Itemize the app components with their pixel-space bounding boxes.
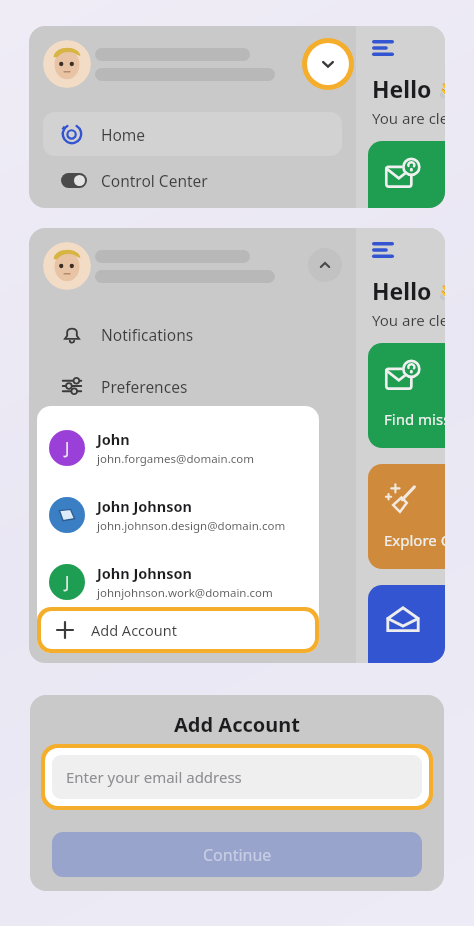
staticText: Find miss: [384, 207, 445, 208]
button[interactable]: Notifications: [43, 312, 342, 356]
staticText: John: [97, 429, 130, 449]
staticText: You are cle: [372, 108, 445, 128]
button[interactable]: Control Center: [43, 160, 342, 200]
staticText: Continue: [203, 844, 272, 866]
button[interactable]: Find miss: [368, 141, 445, 208]
button[interactable]: J: [37, 548, 319, 615]
button[interactable]: Preferences: [43, 364, 342, 408]
staticText: You are cle: [372, 310, 445, 330]
button[interactable]: [368, 585, 445, 663]
button[interactable]: Collapse account list: [308, 248, 342, 282]
staticText: Explore C: [384, 530, 445, 550]
staticText: J: [65, 437, 70, 459]
staticText: Hello 👋: [372, 275, 445, 306]
button[interactable]: John Johnson: [37, 481, 319, 548]
button[interactable]: Enter your email address: [52, 755, 422, 799]
staticText: Add Account: [91, 620, 177, 640]
staticText: Find miss: [384, 409, 445, 429]
staticText: John Johnson: [97, 496, 192, 516]
staticText: john.johnson.design@domain.com: [97, 518, 286, 534]
other: Menu: [372, 40, 394, 56]
staticText: Preferences: [101, 376, 188, 397]
staticText: Hello 👋: [372, 73, 445, 104]
button[interactable]: Add Account: [41, 611, 315, 649]
staticText: Control Center: [101, 170, 208, 191]
button[interactable]: Expand account list: [307, 43, 349, 85]
staticText: Home: [101, 124, 146, 145]
staticText: john.forgames@domain.com: [97, 451, 254, 467]
staticText: Add Account: [174, 711, 300, 738]
staticText: Enter your email address: [66, 767, 242, 787]
other: Menu: [372, 242, 394, 258]
staticText: Notifications: [101, 324, 194, 345]
staticText: J: [65, 571, 70, 593]
button[interactable]: Find miss: [368, 343, 445, 448]
button[interactable]: Home: [43, 112, 342, 156]
button[interactable]: J: [37, 414, 319, 481]
staticText: John Johnson: [97, 563, 192, 583]
button[interactable]: Continue: [52, 832, 422, 877]
staticText: johnjohnson.work@domain.com: [97, 585, 273, 601]
button[interactable]: Explore C: [368, 464, 445, 569]
